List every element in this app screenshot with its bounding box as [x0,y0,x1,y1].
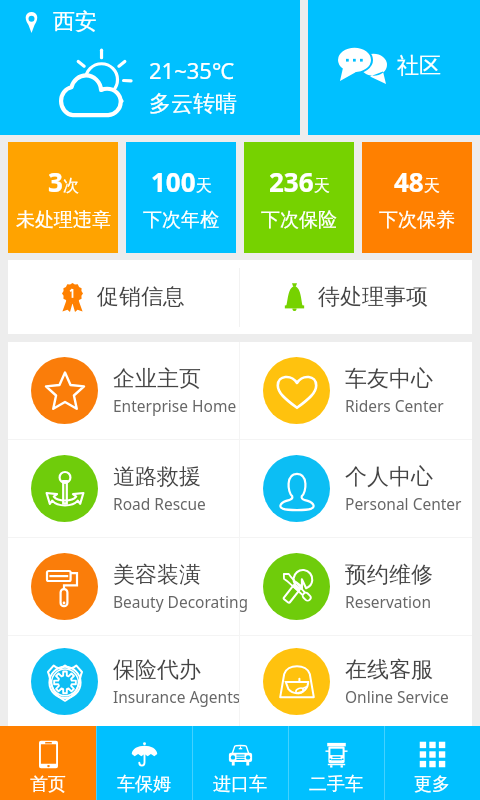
staticText: 3 [48,164,63,199]
staticText: 236 [269,164,314,199]
staticText: 下次保养 [379,208,455,232]
button[interactable]: 道路救援 [8,440,239,537]
button[interactable]: 社区 [308,0,480,135]
button[interactable]: 首页 [0,726,96,800]
button[interactable]: 待处理事项 [240,260,472,334]
button[interactable]: 促销信息 [8,260,239,334]
staticText: Beauty Decorating [113,591,248,612]
staticText: 促销信息 [97,283,185,311]
staticText: 西安 [53,8,97,36]
staticText: 待处理事项 [318,283,428,311]
staticText: 未处理违章 [16,208,111,232]
staticText: 进口车 [213,773,267,796]
button[interactable]: 车友中心 [240,342,472,439]
staticText: 企业主页 [113,365,201,393]
button[interactable]: 企业主页 [8,342,239,439]
button[interactable]: 保险代办 [8,636,239,726]
staticText: 在线客服 [345,656,433,684]
staticText: 21~35℃ [149,55,234,85]
staticText: 首页 [30,773,66,796]
staticText: Personal Center [345,493,462,514]
staticText: 保险代办 [113,656,201,684]
staticText: Reservation [345,591,432,612]
staticText: Riders Center [345,395,444,416]
button[interactable]: 100 [126,142,236,253]
staticText: 美容装潢 [113,561,201,589]
staticText: 车友中心 [345,365,433,393]
staticText: 道路救援 [113,463,201,491]
button[interactable]: 二手车 [288,726,384,800]
staticText: 多云转晴 [149,90,237,118]
staticText: 100 [151,164,196,199]
staticText: 下次保险 [261,208,337,232]
staticText: 48 [394,164,424,199]
button[interactable]: 236 [244,142,354,253]
button[interactable]: 更多 [384,726,480,800]
staticText: Insurance Agents [113,686,241,707]
button[interactable]: 预约维修 [240,538,472,635]
staticText: 个人中心 [345,463,433,491]
button[interactable]: 车保姆 [96,726,192,800]
staticText: Online Service [345,686,449,707]
staticText: 下次年检 [143,208,219,232]
staticText: 天 [314,176,330,196]
button[interactable]: 48 [362,142,472,253]
staticText: 次 [63,176,79,196]
staticText: 车保姆 [117,773,171,796]
staticText: 天 [196,176,212,196]
staticText: 二手车 [309,773,363,796]
button[interactable]: 个人中心 [240,440,472,537]
staticText: 预约维修 [345,561,433,589]
button[interactable]: 美容装潢 [8,538,239,635]
button[interactable]: 西安 [0,0,300,135]
staticText: 天 [424,176,440,196]
staticText: Enterprise Home [113,395,237,416]
button[interactable]: 3 [8,142,118,253]
staticText: 更多 [414,773,450,796]
staticText: Road Rescue [113,493,206,514]
button[interactable]: 在线客服 [240,636,472,726]
staticText: 社区 [397,52,441,80]
button[interactable]: 进口车 [192,726,288,800]
